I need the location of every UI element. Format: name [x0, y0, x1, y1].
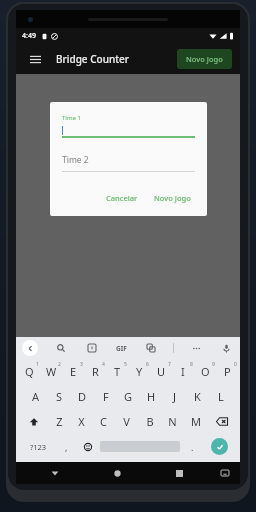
staticText: Y	[136, 364, 143, 379]
button[interactable]: Search	[53, 340, 69, 356]
button[interactable]: Cancelar	[102, 190, 142, 206]
button[interactable]: Back	[22, 340, 38, 356]
button[interactable]: Novo Jogo	[150, 190, 195, 206]
button[interactable]: Q	[18, 359, 40, 384]
button[interactable]: O	[194, 359, 216, 384]
staticText: B	[146, 414, 154, 429]
button[interactable]: .	[182, 434, 203, 459]
button[interactable]: Shift	[19, 409, 48, 434]
staticText: Cancelar	[106, 193, 138, 203]
button[interactable]: N	[161, 409, 184, 434]
staticText: L	[218, 389, 224, 404]
staticText: I	[181, 364, 185, 379]
staticText: U	[157, 364, 166, 379]
staticText: W	[46, 364, 57, 379]
staticText: 8	[190, 361, 193, 368]
staticText: Q	[25, 364, 34, 379]
button[interactable]: ?123	[20, 434, 56, 459]
staticText: 9	[212, 361, 215, 368]
staticText: P	[224, 364, 231, 379]
button[interactable]: Voice input	[218, 340, 234, 356]
button[interactable]: B	[138, 409, 161, 434]
button[interactable]: Enter	[211, 438, 228, 455]
staticText: O	[201, 364, 210, 379]
button[interactable]: I	[172, 359, 194, 384]
button[interactable]: T	[106, 359, 128, 384]
button[interactable]: More options	[188, 340, 204, 356]
button[interactable]: ,	[56, 434, 77, 459]
button[interactable]: Emoji	[77, 434, 98, 459]
staticText: .	[191, 441, 194, 453]
staticText: Bridge Counter	[56, 52, 130, 66]
staticText: 7	[168, 361, 171, 368]
staticText: Time 1	[62, 114, 81, 122]
button[interactable]: Z	[48, 409, 70, 434]
staticText: E	[70, 364, 77, 379]
staticText: 4	[102, 361, 105, 368]
staticText: GIF	[116, 344, 127, 353]
button[interactable]: M	[184, 409, 207, 434]
button[interactable]: P	[216, 359, 238, 384]
staticText: 3	[80, 361, 83, 368]
staticText: 1	[36, 361, 39, 368]
button[interactable]: V	[115, 409, 138, 434]
button[interactable]: Stickers	[84, 340, 100, 356]
staticText: ,	[65, 441, 68, 453]
staticText: A	[32, 389, 40, 404]
button[interactable]: Translate	[143, 340, 159, 356]
staticText: J	[173, 389, 177, 404]
button[interactable]: X	[70, 409, 92, 434]
staticText: S	[56, 389, 63, 404]
button[interactable]: Back	[45, 463, 65, 483]
button[interactable]: K	[186, 384, 209, 409]
button[interactable]: S	[48, 384, 71, 409]
button[interactable]: F	[94, 384, 117, 409]
button[interactable]: Recent apps	[169, 463, 189, 483]
staticText: H	[147, 389, 156, 404]
staticText: R	[92, 364, 99, 379]
staticText: Time 2	[62, 154, 89, 166]
button[interactable]: Menu	[24, 48, 46, 70]
staticText: C	[100, 414, 107, 429]
staticText: Z	[56, 414, 63, 429]
staticText: F	[103, 389, 109, 404]
button[interactable]: D	[71, 384, 94, 409]
button[interactable]: G	[117, 384, 140, 409]
button[interactable]: A	[24, 384, 48, 409]
button[interactable]: C	[92, 409, 115, 434]
button[interactable]: U	[150, 359, 172, 384]
staticText: K	[194, 389, 201, 404]
staticText: X	[78, 414, 85, 429]
button[interactable]: W	[40, 359, 62, 384]
staticText: T	[114, 364, 121, 379]
button[interactable]: Novo Jogo	[177, 49, 232, 69]
button[interactable]: Home	[107, 463, 127, 483]
staticText: 4:49	[22, 31, 36, 41]
staticText: 0	[234, 361, 237, 368]
button[interactable]: H	[140, 384, 163, 409]
button[interactable]: J	[163, 384, 186, 409]
button[interactable]: Keyboard	[216, 464, 234, 482]
staticText: G	[124, 389, 133, 404]
button[interactable]: R	[84, 359, 106, 384]
staticText: ?123	[30, 442, 47, 452]
staticText: 2	[58, 361, 61, 368]
staticText: V	[123, 414, 130, 429]
button[interactable]: Y	[128, 359, 150, 384]
staticText: 5	[124, 361, 127, 368]
staticText: 6	[146, 361, 149, 368]
button[interactable]: GIF	[114, 342, 129, 355]
staticText: Novo Jogo	[186, 54, 223, 64]
staticText: Novo Jogo	[154, 193, 191, 203]
staticText: N	[168, 414, 177, 429]
button[interactable]: L	[209, 384, 232, 409]
staticText: M	[191, 414, 201, 429]
button[interactable]: E	[62, 359, 84, 384]
staticText: D	[78, 389, 87, 404]
button[interactable]: Backspace	[207, 409, 237, 434]
